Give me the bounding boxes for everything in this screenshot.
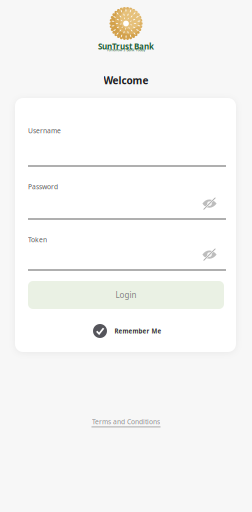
- staticText: Remember Me: [114, 327, 161, 335]
- button[interactable]: Show password: [202, 198, 217, 209]
- button[interactable]: Terms and Conditions: [0, 417, 252, 427]
- button[interactable]: Show token: [202, 249, 217, 260]
- staticText: Username: [28, 126, 61, 135]
- staticText: Welcome: [103, 73, 148, 87]
- staticText: Tomorrow's Bank Today: [106, 48, 145, 52]
- staticText: Token: [28, 235, 47, 244]
- staticText: Password: [28, 182, 58, 191]
- staticText: SunTrust Bank: [98, 41, 154, 52]
- button[interactable]: Remember Me: [93, 324, 161, 338]
- staticText: Terms and Conditions: [92, 417, 160, 426]
- staticText: Login: [115, 290, 136, 300]
- button[interactable]: Login: [28, 281, 224, 309]
